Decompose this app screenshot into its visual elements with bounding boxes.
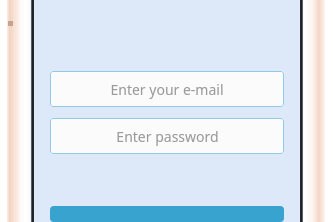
button[interactable]: Enter your e-mail bbox=[50, 71, 284, 107]
staticText: Enter your e-mail bbox=[110, 80, 224, 99]
button[interactable]: Enter password bbox=[50, 118, 284, 154]
staticText: Enter password bbox=[116, 127, 219, 146]
button[interactable]: Sign in bbox=[50, 206, 284, 222]
